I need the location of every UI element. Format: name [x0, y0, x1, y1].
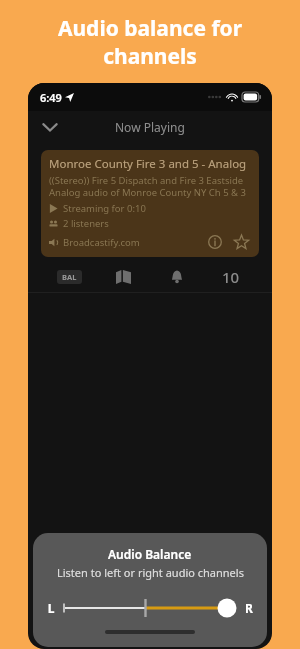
staticText: Audio balance for channels	[10, 14, 290, 70]
staticText: ((Stereo)) Fire 5 Dispatch and Fire 3 Ea…	[49, 174, 251, 199]
staticText: Now Playing	[115, 119, 185, 135]
button[interactable]: Map	[96, 263, 150, 291]
button[interactable]: Favorite	[231, 232, 251, 252]
staticText: Streaming for 0:10	[63, 202, 146, 215]
staticText: Monroe County Fire 3 and 5 - Analog	[49, 156, 247, 172]
staticText: Broadcastify.com	[63, 236, 140, 249]
staticText: BAL	[62, 272, 77, 282]
button[interactable]: BAL	[57, 270, 82, 284]
button[interactable]: 10	[220, 265, 242, 289]
button[interactable]: L	[40, 595, 260, 621]
staticText: 6:49	[40, 90, 62, 105]
staticText: L	[40, 600, 62, 616]
staticText: 2 listeners	[63, 217, 109, 230]
staticText: Audio Balance	[108, 546, 192, 562]
button[interactable]: Collapse	[34, 111, 66, 143]
button[interactable]: Info	[205, 232, 225, 252]
button[interactable]: Alerts	[150, 263, 204, 291]
button[interactable]: Monroe County Fire 3 and 5 - Analog	[41, 150, 259, 257]
staticText: Listen to left or right audio channels	[57, 565, 244, 580]
staticText: 10	[222, 267, 240, 287]
staticText: R	[238, 600, 260, 616]
